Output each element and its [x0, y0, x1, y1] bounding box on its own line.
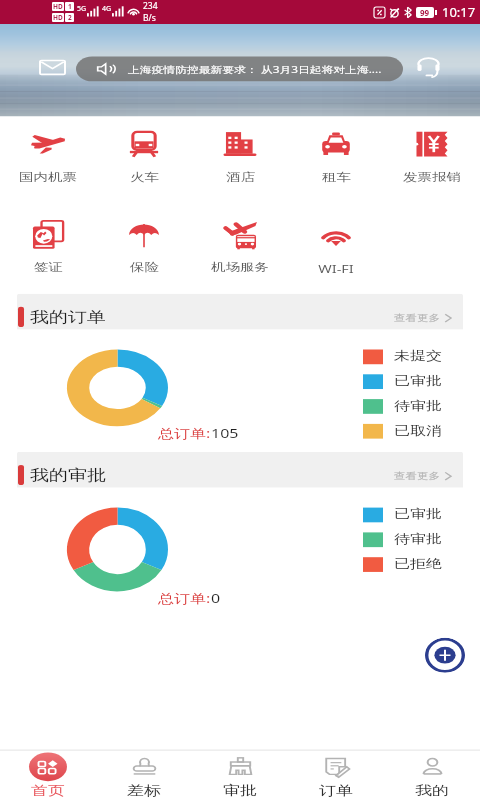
staticText: 已审批 — [394, 507, 442, 522]
button[interactable]: 首页 — [0, 751, 96, 800]
staticText: 机场服务 — [211, 260, 269, 274]
staticText: 未提交 — [394, 349, 442, 364]
button[interactable]: 订单 — [288, 751, 384, 800]
button[interactable]: 我的 — [384, 751, 480, 800]
staticText: 105 — [211, 425, 239, 442]
button[interactable]: 审批 — [192, 751, 288, 800]
button[interactable]: 火车 — [96, 129, 192, 188]
staticText: 签证 — [34, 260, 63, 274]
staticText: 5G — [77, 4, 87, 14]
button[interactable]: Customer service — [404, 53, 452, 82]
staticText: 已审批 — [394, 373, 442, 389]
staticText: 已拒绝 — [394, 556, 442, 572]
staticText: HD — [53, 13, 63, 22]
button[interactable]: 酒店 — [192, 129, 288, 188]
button[interactable]: 差标 — [96, 751, 192, 800]
staticText: 订单 — [319, 783, 353, 799]
staticText: 总订单: — [158, 590, 211, 607]
button[interactable]: 发票报销 — [384, 129, 480, 188]
staticText: 发票报销 — [403, 170, 461, 184]
button[interactable]: 我的审批 — [17, 452, 463, 487]
staticText: 1 — [68, 2, 72, 11]
staticText: 10:17 — [442, 3, 476, 21]
staticText: 待审批 — [394, 532, 442, 547]
staticText: 234 — [143, 0, 158, 12]
button[interactable]: 上海疫情防控最新要求： 从3月3日起将对上海.... — [76, 56, 403, 81]
staticText: 保险 — [130, 260, 159, 274]
button[interactable]: 我的订单 — [17, 294, 463, 329]
staticText: B/s — [143, 12, 156, 24]
staticText: 我的 — [415, 783, 449, 799]
staticText: 总订单: — [158, 425, 211, 442]
button[interactable]: Add — [425, 638, 465, 673]
button[interactable]: WI-FI — [288, 220, 384, 279]
button[interactable]: 机场服务 — [192, 220, 288, 279]
staticText: HD — [53, 2, 63, 11]
staticText: 99 — [420, 7, 430, 18]
staticText: 查看更多 — [394, 312, 440, 323]
staticText: 首页 — [31, 783, 65, 799]
staticText: 国内机票 — [19, 170, 77, 184]
staticText: 我的审批 — [30, 466, 106, 485]
staticText: 0 — [211, 590, 221, 607]
staticText: 待审批 — [394, 398, 442, 414]
staticText: 租车 — [322, 170, 351, 184]
button[interactable]: 租车 — [288, 129, 384, 188]
button[interactable]: 国内机票 — [0, 129, 96, 188]
button[interactable]: 签证 — [0, 220, 96, 279]
button[interactable]: 保险 — [96, 220, 192, 279]
staticText: 火车 — [130, 170, 159, 184]
staticText: 已取消 — [394, 423, 442, 439]
staticText: 酒店 — [226, 170, 255, 184]
staticText: 4G — [102, 4, 112, 14]
staticText: 查看更多 — [394, 470, 440, 481]
staticText: WI-FI — [318, 260, 354, 276]
button[interactable]: Messages — [28, 53, 76, 82]
staticText: 审批 — [223, 783, 257, 799]
staticText: 我的订单 — [30, 308, 106, 327]
staticText: 上海疫情防控最新要求： 从3月3日起将对上海.... — [128, 63, 382, 75]
staticText: 差标 — [127, 783, 161, 799]
staticText: 2 — [68, 13, 72, 22]
